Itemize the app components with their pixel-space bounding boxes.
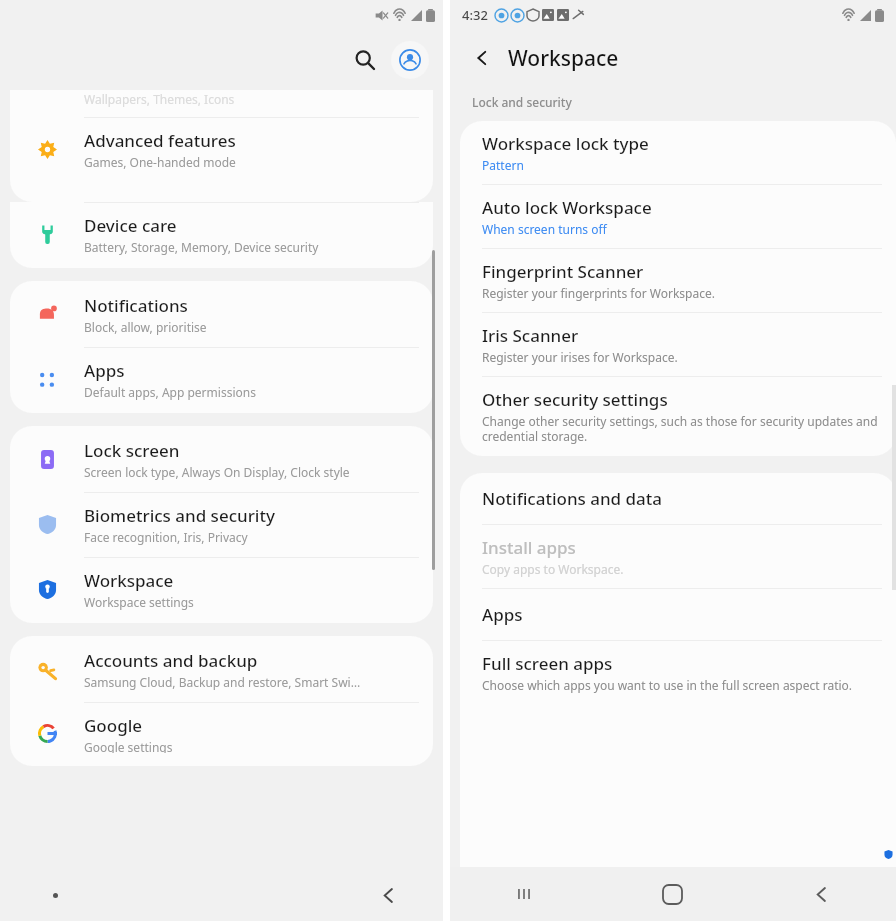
button[interactable]: Google <box>10 703 433 766</box>
button[interactable]: Search <box>345 40 385 80</box>
staticText: Samsung Cloud, Backup and restore, Smart… <box>84 674 361 690</box>
staticText: Battery, Storage, Memory, Device securit… <box>84 239 319 255</box>
staticText: Register your fingerprints for Workspace… <box>482 285 715 301</box>
staticText: Apps <box>84 359 125 382</box>
staticText: When screen turns off <box>482 221 607 237</box>
staticText: 4:32 <box>462 6 488 24</box>
staticText: Games, One-handed mode <box>84 154 236 170</box>
staticText: Notifications <box>84 294 188 317</box>
button[interactable]: Notifications and data <box>460 473 896 524</box>
staticText: Auto lock Workspace <box>482 196 652 219</box>
button[interactable]: Workspace lock type <box>460 121 896 184</box>
button[interactable]: Workspace <box>10 558 433 623</box>
staticText: Copy apps to Workspace. <box>482 561 624 577</box>
button[interactable]: Accounts and backup <box>10 636 433 702</box>
staticText: Accounts and backup <box>84 649 258 672</box>
staticText: Notifications and data <box>482 487 663 510</box>
button[interactable]: Full screen apps <box>460 641 896 704</box>
button[interactable]: Notifications <box>10 281 433 347</box>
button[interactable]: Biometrics and security <box>10 493 433 557</box>
staticText: Workspace lock type <box>482 132 649 155</box>
staticText: Lock and security <box>472 94 572 110</box>
button[interactable]: Back <box>462 38 502 78</box>
staticText: Fingerprint Scanner <box>482 260 644 283</box>
staticText: Google settings <box>84 739 173 753</box>
staticText: Change other security settings, such as … <box>482 413 882 444</box>
staticText: Default apps, App permissions <box>84 384 256 400</box>
staticText: Register your irises for Workspace. <box>482 349 678 365</box>
button[interactable]: Install apps <box>460 525 896 588</box>
staticText: Other security settings <box>482 388 668 411</box>
button[interactable]: Recents <box>0 869 110 921</box>
button[interactable]: Device care <box>10 203 433 268</box>
button[interactable]: Lock screen <box>10 426 433 492</box>
staticText: Iris Scanner <box>482 324 579 347</box>
staticText: Install apps <box>482 536 576 559</box>
button[interactable]: Recents <box>450 867 598 921</box>
staticText: Pattern <box>482 157 524 173</box>
button[interactable]: Account <box>391 41 429 79</box>
button[interactable]: Fingerprint Scanner <box>460 249 896 312</box>
button[interactable]: Auto lock Workspace <box>460 185 896 248</box>
button[interactable]: Home <box>598 867 747 921</box>
staticText: Device care <box>84 214 177 237</box>
button[interactable]: Advanced features <box>10 118 433 182</box>
staticText: Lock screen <box>84 439 180 462</box>
staticText: Apps <box>482 603 523 626</box>
button[interactable]: Back <box>747 867 896 921</box>
staticText: Workspace <box>84 569 174 592</box>
staticText: Wallpapers, Themes, Icons <box>84 91 235 107</box>
button[interactable]: Apps <box>10 348 433 413</box>
button[interactable]: Iris Scanner <box>460 313 896 376</box>
staticText: Face recognition, Iris, Privacy <box>84 529 248 545</box>
staticText: Screen lock type, Always On Display, Clo… <box>84 464 350 480</box>
button[interactable]: Back <box>333 869 443 921</box>
staticText: Workspace <box>508 44 619 73</box>
staticText: Biometrics and security <box>84 504 275 527</box>
button[interactable]: Other security settings <box>460 377 896 456</box>
button[interactable]: Apps <box>460 589 896 640</box>
staticText: Google <box>84 714 143 737</box>
staticText: Block, allow, prioritise <box>84 319 207 335</box>
staticText: Full screen apps <box>482 652 613 675</box>
staticText: Choose which apps you want to use in the… <box>482 677 853 693</box>
staticText: Workspace settings <box>84 594 194 610</box>
staticText: Advanced features <box>84 129 236 152</box>
